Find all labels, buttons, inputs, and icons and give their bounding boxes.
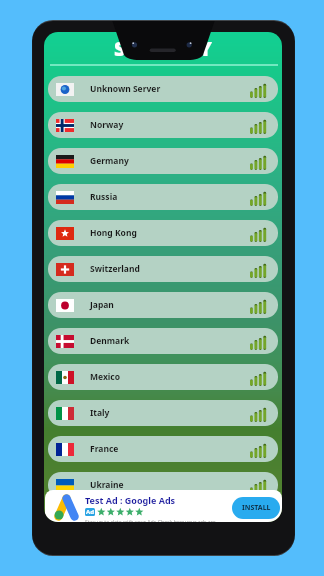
staticText: Stay up to date with your Ads Check how … (85, 518, 216, 522)
staticText: INSTALL (242, 503, 271, 513)
button[interactable]: Russia (48, 184, 278, 210)
staticText: Denmark (90, 335, 130, 347)
button[interactable]: Denmark (48, 328, 278, 354)
button[interactable]: Mexico (48, 364, 278, 390)
staticText: Russia (90, 191, 118, 203)
button[interactable]: Hong Kong (48, 220, 278, 246)
staticText: Hong Kong (90, 227, 137, 239)
button[interactable]: Italy (48, 400, 278, 426)
staticText: Italy (90, 407, 110, 419)
button[interactable]: Test Ad : Google Ads (45, 490, 282, 522)
button[interactable]: Ukraine (48, 472, 278, 498)
staticText: SECURITY (114, 35, 213, 62)
staticText: Norway (90, 119, 124, 131)
staticText: Unknown Server (90, 83, 161, 95)
staticText: Ad (86, 508, 94, 516)
button[interactable]: Switzerland (48, 256, 278, 282)
staticText: Japan (90, 299, 114, 311)
staticText: Mexico (90, 371, 121, 383)
staticText: France (90, 443, 119, 455)
button[interactable]: INSTALL (232, 497, 280, 519)
button[interactable]: France (48, 436, 278, 462)
staticText: Switzerland (90, 263, 140, 275)
staticText: Germany (90, 155, 129, 167)
button[interactable]: Norway (48, 112, 278, 138)
button[interactable]: Japan (48, 292, 278, 318)
button[interactable]: Unknown Server (48, 76, 278, 102)
button[interactable]: Germany (48, 148, 278, 174)
staticText: Test Ad : Google Ads (85, 494, 176, 506)
staticText: Ukraine (90, 479, 124, 491)
